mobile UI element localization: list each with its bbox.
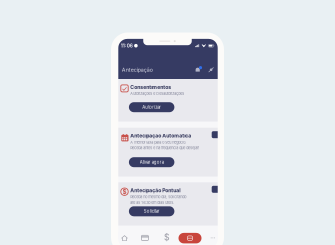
button[interactable]: Cartões (140, 234, 150, 242)
button[interactable]: Início (120, 234, 130, 242)
staticText: 11:06 (121, 43, 133, 49)
staticText: Autorizações e Desautorizações (130, 91, 184, 96)
button[interactable]: Notificações (195, 67, 201, 73)
button[interactable]: Antecipação (178, 233, 201, 243)
staticText: Antecipação Automática (130, 133, 191, 139)
button[interactable]: Vendas (162, 233, 172, 241)
button[interactable]: Autorizar (129, 102, 174, 112)
staticText: $ (122, 188, 126, 195)
staticText: Antecipação (122, 66, 153, 73)
staticText: A melhor taxa para o seu negócio. (130, 140, 186, 144)
button[interactable]: Ocultar saldo (208, 67, 214, 73)
staticText: Antecipação Pontual (130, 187, 180, 193)
staticText: Solicitar (144, 209, 160, 214)
button[interactable]: Ativar agora (129, 157, 174, 167)
staticText: até as 16:30 em dias úteis. (130, 200, 174, 205)
staticText: Autorizar (142, 105, 161, 110)
staticText: Receba no mesmo dia, solicitando (130, 195, 186, 199)
staticText: Receba antes e na frequência que desejar… (130, 146, 199, 150)
staticText: Ativar agora (140, 160, 164, 165)
button[interactable]: Solicitar (129, 206, 174, 216)
staticText: Consentimentos (130, 84, 171, 90)
button[interactable]: Mais (208, 234, 218, 242)
staticText: $ (164, 232, 170, 243)
